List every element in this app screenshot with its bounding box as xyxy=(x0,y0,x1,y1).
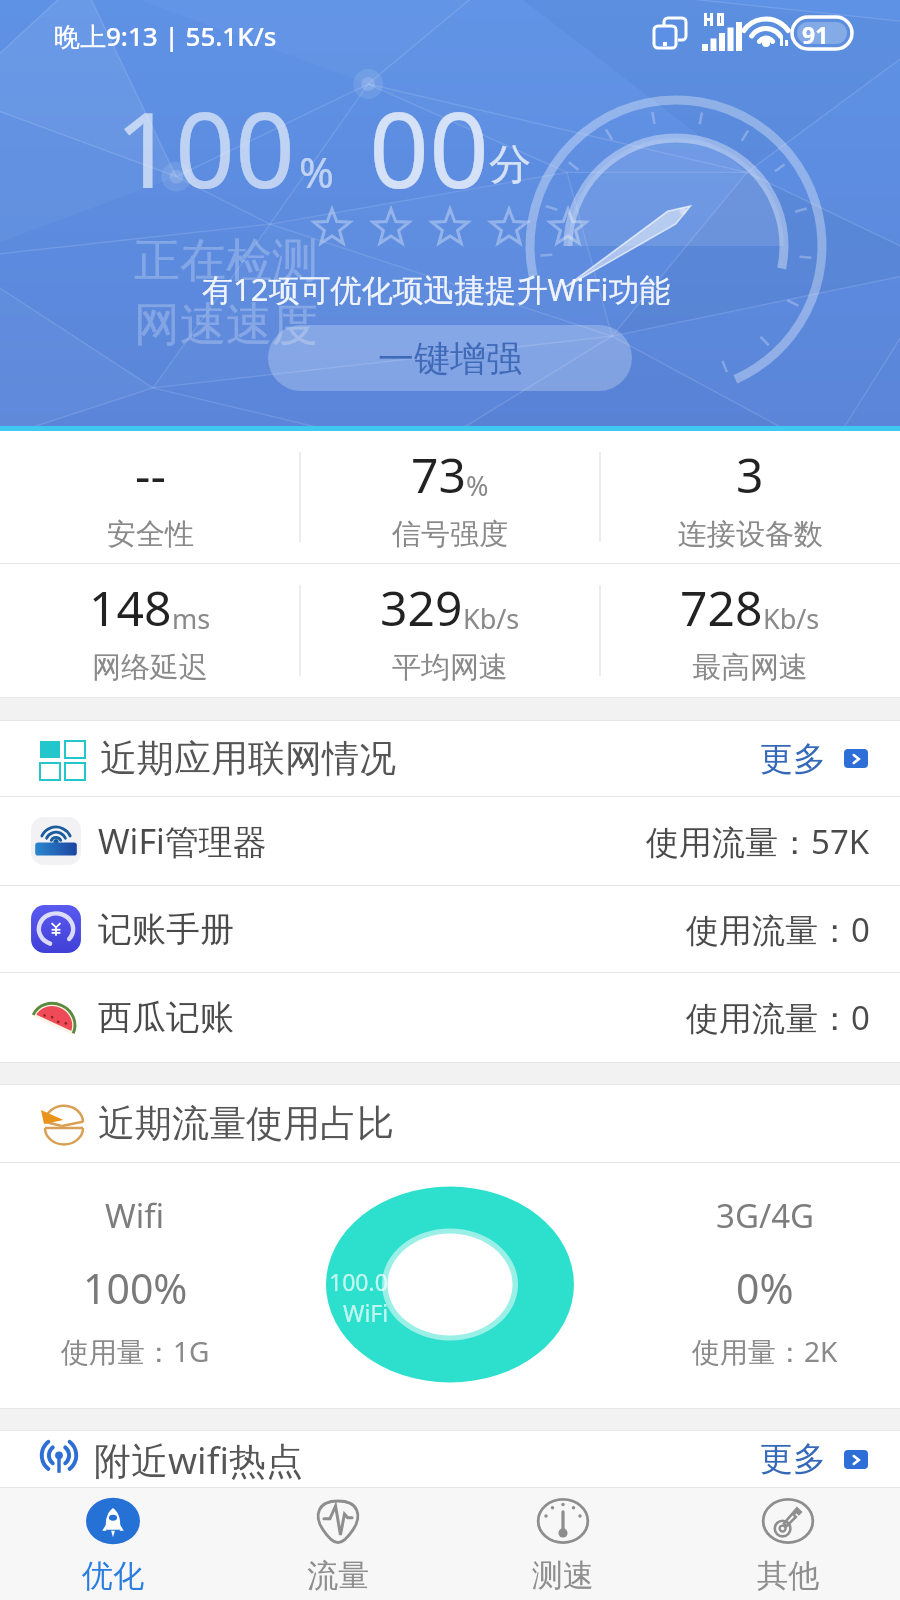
staticText: % xyxy=(299,143,334,200)
staticText: 最高网速 xyxy=(692,649,808,686)
staticText: Kb/s xyxy=(763,600,820,637)
staticText: 使用流量：0 xyxy=(686,907,870,952)
staticText: 网速速度 xyxy=(134,296,318,354)
staticText: 晚上9:13 | 55.1K/s xyxy=(54,18,277,54)
staticText: Kb/s xyxy=(463,600,520,637)
staticText: 00 xyxy=(369,76,490,219)
button[interactable]: 近期流量使用占比 xyxy=(36,1085,868,1162)
button[interactable]: 附近wifi热点 xyxy=(36,1431,868,1487)
staticText: 其他 xyxy=(757,1556,819,1595)
staticText: ms xyxy=(172,600,211,637)
staticText: 近期流量使用占比 xyxy=(98,1100,394,1147)
staticText: 正在检测 xyxy=(134,232,318,290)
staticText: 728 xyxy=(680,575,763,640)
button[interactable]: 优化 xyxy=(0,1488,225,1600)
staticText: 测速 xyxy=(532,1556,594,1595)
staticText: 3 xyxy=(736,442,764,507)
button[interactable]: 西瓜记账 xyxy=(30,973,870,1062)
staticText: 记账手册 xyxy=(98,908,234,951)
staticText: 网络延迟 xyxy=(92,649,208,686)
staticText: 3G/4G xyxy=(716,1193,815,1238)
other: 更多 xyxy=(844,749,868,768)
staticText: 使用量：2K xyxy=(692,1332,838,1370)
staticText: 优化 xyxy=(82,1556,144,1595)
staticText: 100% xyxy=(83,1260,188,1316)
button[interactable]: 其他 xyxy=(675,1488,900,1600)
staticText: 连接设备数 xyxy=(678,516,823,553)
button[interactable]: 记账手册 xyxy=(30,886,870,972)
button[interactable]: WiFi管理器 xyxy=(30,797,870,885)
staticText: 更多 xyxy=(760,738,826,780)
staticText: 信号强度 xyxy=(392,516,508,553)
staticText: 使用量：1G xyxy=(61,1332,210,1370)
button[interactable]: 近期应用联网情况 xyxy=(40,721,868,796)
staticText: WiFi管理器 xyxy=(98,818,267,864)
staticText: 100.0 % xyxy=(329,1266,413,1297)
staticText: 附近wifi热点 xyxy=(94,1434,303,1485)
staticText: 100 xyxy=(115,76,296,219)
staticText: Wifi xyxy=(105,1193,165,1238)
staticText: 平均网速 xyxy=(392,649,508,686)
staticText: WiFi xyxy=(343,1297,389,1328)
staticText: 73 xyxy=(411,442,466,507)
staticText: 使用流量：57K xyxy=(646,819,870,864)
staticText: 一键增强 xyxy=(378,336,522,381)
staticText: -- xyxy=(135,442,166,507)
staticText: % xyxy=(466,467,489,504)
staticText: 329 xyxy=(380,575,463,640)
staticText: 西瓜记账 xyxy=(98,996,234,1039)
staticText: 使用流量：0 xyxy=(686,995,870,1040)
staticText: 0% xyxy=(736,1260,794,1316)
staticText: 流量 xyxy=(307,1556,369,1595)
button[interactable]: 流量 xyxy=(225,1488,450,1600)
button[interactable]: 测速 xyxy=(450,1488,675,1600)
staticText: 近期应用联网情况 xyxy=(100,735,396,782)
staticText: 更多 xyxy=(760,1438,826,1480)
staticText: 分 xyxy=(489,139,531,192)
button[interactable]: 一键增强 xyxy=(268,325,632,391)
staticText: 148 xyxy=(89,575,172,640)
staticText: 有12项可优化项迅捷提升WiFi功能 xyxy=(202,268,671,310)
staticText: 安全性 xyxy=(107,516,194,553)
staticText: 91 xyxy=(802,19,829,47)
other: 更多 xyxy=(844,1450,868,1469)
